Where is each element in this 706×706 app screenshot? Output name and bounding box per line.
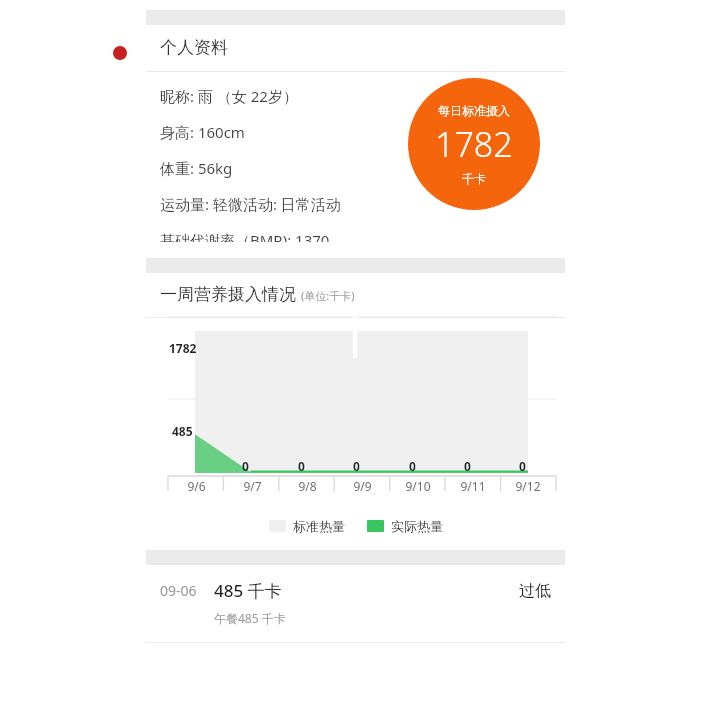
staticText: 0 xyxy=(519,458,526,474)
button[interactable]: 一周营养摄入情况 xyxy=(146,273,565,317)
staticText: 9/11 xyxy=(460,478,486,494)
staticText: 0 xyxy=(242,458,249,474)
staticText: 9/12 xyxy=(515,478,541,494)
staticText: 0 xyxy=(409,458,416,474)
staticText: 一周营养摄入情况 xyxy=(160,284,296,305)
staticText: 运动量: 轻微活动: 日常活动 xyxy=(160,194,341,214)
staticText: 体重: 56kg xyxy=(160,158,233,178)
staticText: 身高: 160cm xyxy=(160,122,245,142)
staticText: 午餐485 千卡 xyxy=(214,610,286,626)
staticText: 1782 xyxy=(435,121,513,167)
staticText: 0 xyxy=(464,458,471,474)
staticText: 485 千卡 xyxy=(214,579,282,602)
staticText: 个人资料 xyxy=(160,37,228,58)
staticText: 过低 xyxy=(519,581,551,601)
staticText: 千卡 xyxy=(462,171,486,186)
button[interactable]: 09-06 xyxy=(146,565,565,643)
staticText: 0 xyxy=(353,458,360,474)
staticText: 每日标准摄入 xyxy=(438,103,510,118)
staticText: 485 xyxy=(172,423,193,439)
staticText: 1782 xyxy=(169,340,197,356)
staticText: 0 xyxy=(298,458,305,474)
staticText: 实际热量 xyxy=(391,518,443,534)
staticText: 9/7 xyxy=(243,478,262,494)
staticText: 9/9 xyxy=(353,478,372,494)
staticText: (单位:千卡) xyxy=(301,288,355,303)
staticText: 9/8 xyxy=(298,478,317,494)
staticText: 9/10 xyxy=(405,478,431,494)
button[interactable]: 每日标准摄入 xyxy=(408,78,540,210)
button[interactable]: 个人资料 xyxy=(146,25,565,71)
staticText: 昵称: 雨 （女 22岁） xyxy=(160,86,298,106)
other: Status indicator xyxy=(113,46,127,60)
staticText: 标准热量 xyxy=(293,518,345,534)
staticText: 基础代谢率（BMR): 1370 xyxy=(160,230,330,242)
staticText: 09-06 xyxy=(160,581,197,600)
staticText: 9/6 xyxy=(187,478,206,494)
